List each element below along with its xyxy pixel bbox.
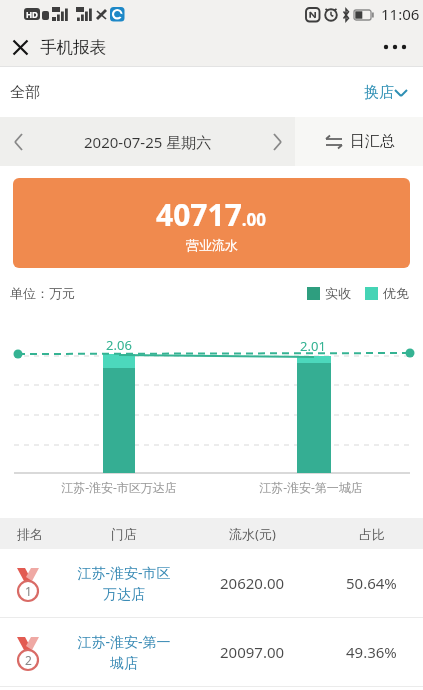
staticText: 门店 (111, 526, 137, 542)
staticText: 流水(元) (229, 525, 276, 543)
staticText: HD (26, 9, 38, 20)
staticText: 2 (25, 652, 32, 668)
button[interactable] (0, 28, 40, 66)
staticText: 2020-07-25 星期六 (84, 132, 212, 152)
button[interactable]: 换店 (364, 83, 408, 102)
button[interactable]: 40717.00 (13, 178, 410, 268)
staticText: 占比 (359, 526, 385, 542)
staticText: 优免 (383, 285, 409, 301)
staticText: 50.64% (346, 573, 397, 593)
staticText: 江苏-淮安-第一城店 (240, 479, 382, 495)
staticText: 实收 (325, 285, 351, 301)
button[interactable] (0, 117, 36, 166)
staticText: 手机报表 (40, 37, 106, 58)
staticText: 全部 (10, 83, 40, 102)
staticText: 单位：万元 (10, 285, 75, 301)
staticText: 日汇总 (350, 132, 395, 151)
button[interactable] (373, 28, 417, 66)
staticText: 20097.00 (220, 642, 285, 662)
staticText: 40717.00 (156, 194, 267, 235)
staticText: 2.01 (293, 337, 333, 355)
staticText: 20620.00 (220, 573, 285, 593)
button[interactable]: 2 (0, 618, 423, 686)
staticText: 1 (25, 583, 32, 599)
button[interactable]: 日汇总 (295, 117, 423, 166)
staticText: 2.06 (99, 336, 139, 354)
staticText: 排名 (17, 526, 43, 542)
staticText: 换店 (364, 83, 394, 102)
staticText: 江苏-淮安-市区万达店 (44, 479, 194, 495)
staticText: 江苏-淮安-第一 城店 (77, 632, 171, 672)
staticText: 营业流水 (186, 237, 238, 253)
button[interactable] (259, 117, 295, 166)
staticText: 江苏-淮安-市区 万达店 (77, 563, 171, 603)
button[interactable]: 1 (0, 549, 423, 617)
staticText: 11:06 (381, 4, 420, 24)
staticText: 49.36% (346, 642, 397, 662)
